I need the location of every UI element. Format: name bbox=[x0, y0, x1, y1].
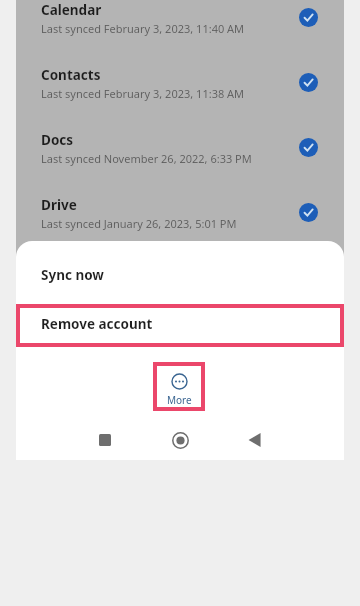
button[interactable]: Calendar bbox=[16, 0, 344, 65]
button[interactable]: Docs bbox=[16, 130, 344, 195]
button[interactable]: Home bbox=[164, 424, 196, 456]
button[interactable]: Back bbox=[238, 424, 270, 456]
staticText: Contacts bbox=[41, 66, 101, 84]
button[interactable]: Drive bbox=[16, 195, 344, 260]
staticText: Sync now bbox=[41, 266, 104, 284]
button[interactable]: Remove account bbox=[16, 304, 344, 347]
staticText: Docs bbox=[41, 131, 74, 149]
button[interactable]: Contacts bbox=[16, 65, 344, 130]
staticText: Last synced January 26, 2023, 5:01 PM bbox=[41, 216, 237, 231]
button[interactable]: Recent apps bbox=[89, 424, 121, 456]
staticText: More bbox=[167, 393, 192, 407]
button[interactable]: Sync now bbox=[16, 241, 344, 303]
staticText: Drive bbox=[41, 196, 77, 214]
staticText: Calendar bbox=[41, 1, 102, 19]
staticText: Remove account bbox=[41, 315, 153, 333]
staticText: Last synced February 3, 2023, 11:38 AM bbox=[41, 86, 245, 101]
button[interactable]: More bbox=[153, 362, 205, 411]
staticText: Last synced February 3, 2023, 11:40 AM bbox=[41, 21, 245, 36]
staticText: Last synced November 26, 2022, 6:33 PM bbox=[41, 151, 252, 166]
